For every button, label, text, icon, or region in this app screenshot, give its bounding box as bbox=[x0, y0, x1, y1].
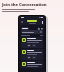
staticText: Join the Conversation bbox=[2, 2, 47, 8]
button[interactable]: More options bbox=[40, 20, 44, 24]
button[interactable] bbox=[21, 61, 43, 68]
button[interactable] bbox=[21, 27, 29, 30]
button[interactable]: Search bbox=[37, 27, 40, 30]
button[interactable] bbox=[21, 37, 43, 48]
button[interactable]: Back bbox=[20, 20, 24, 24]
button[interactable] bbox=[21, 49, 43, 60]
button[interactable]: Filter bbox=[40, 27, 43, 30]
button[interactable] bbox=[21, 30, 43, 34]
